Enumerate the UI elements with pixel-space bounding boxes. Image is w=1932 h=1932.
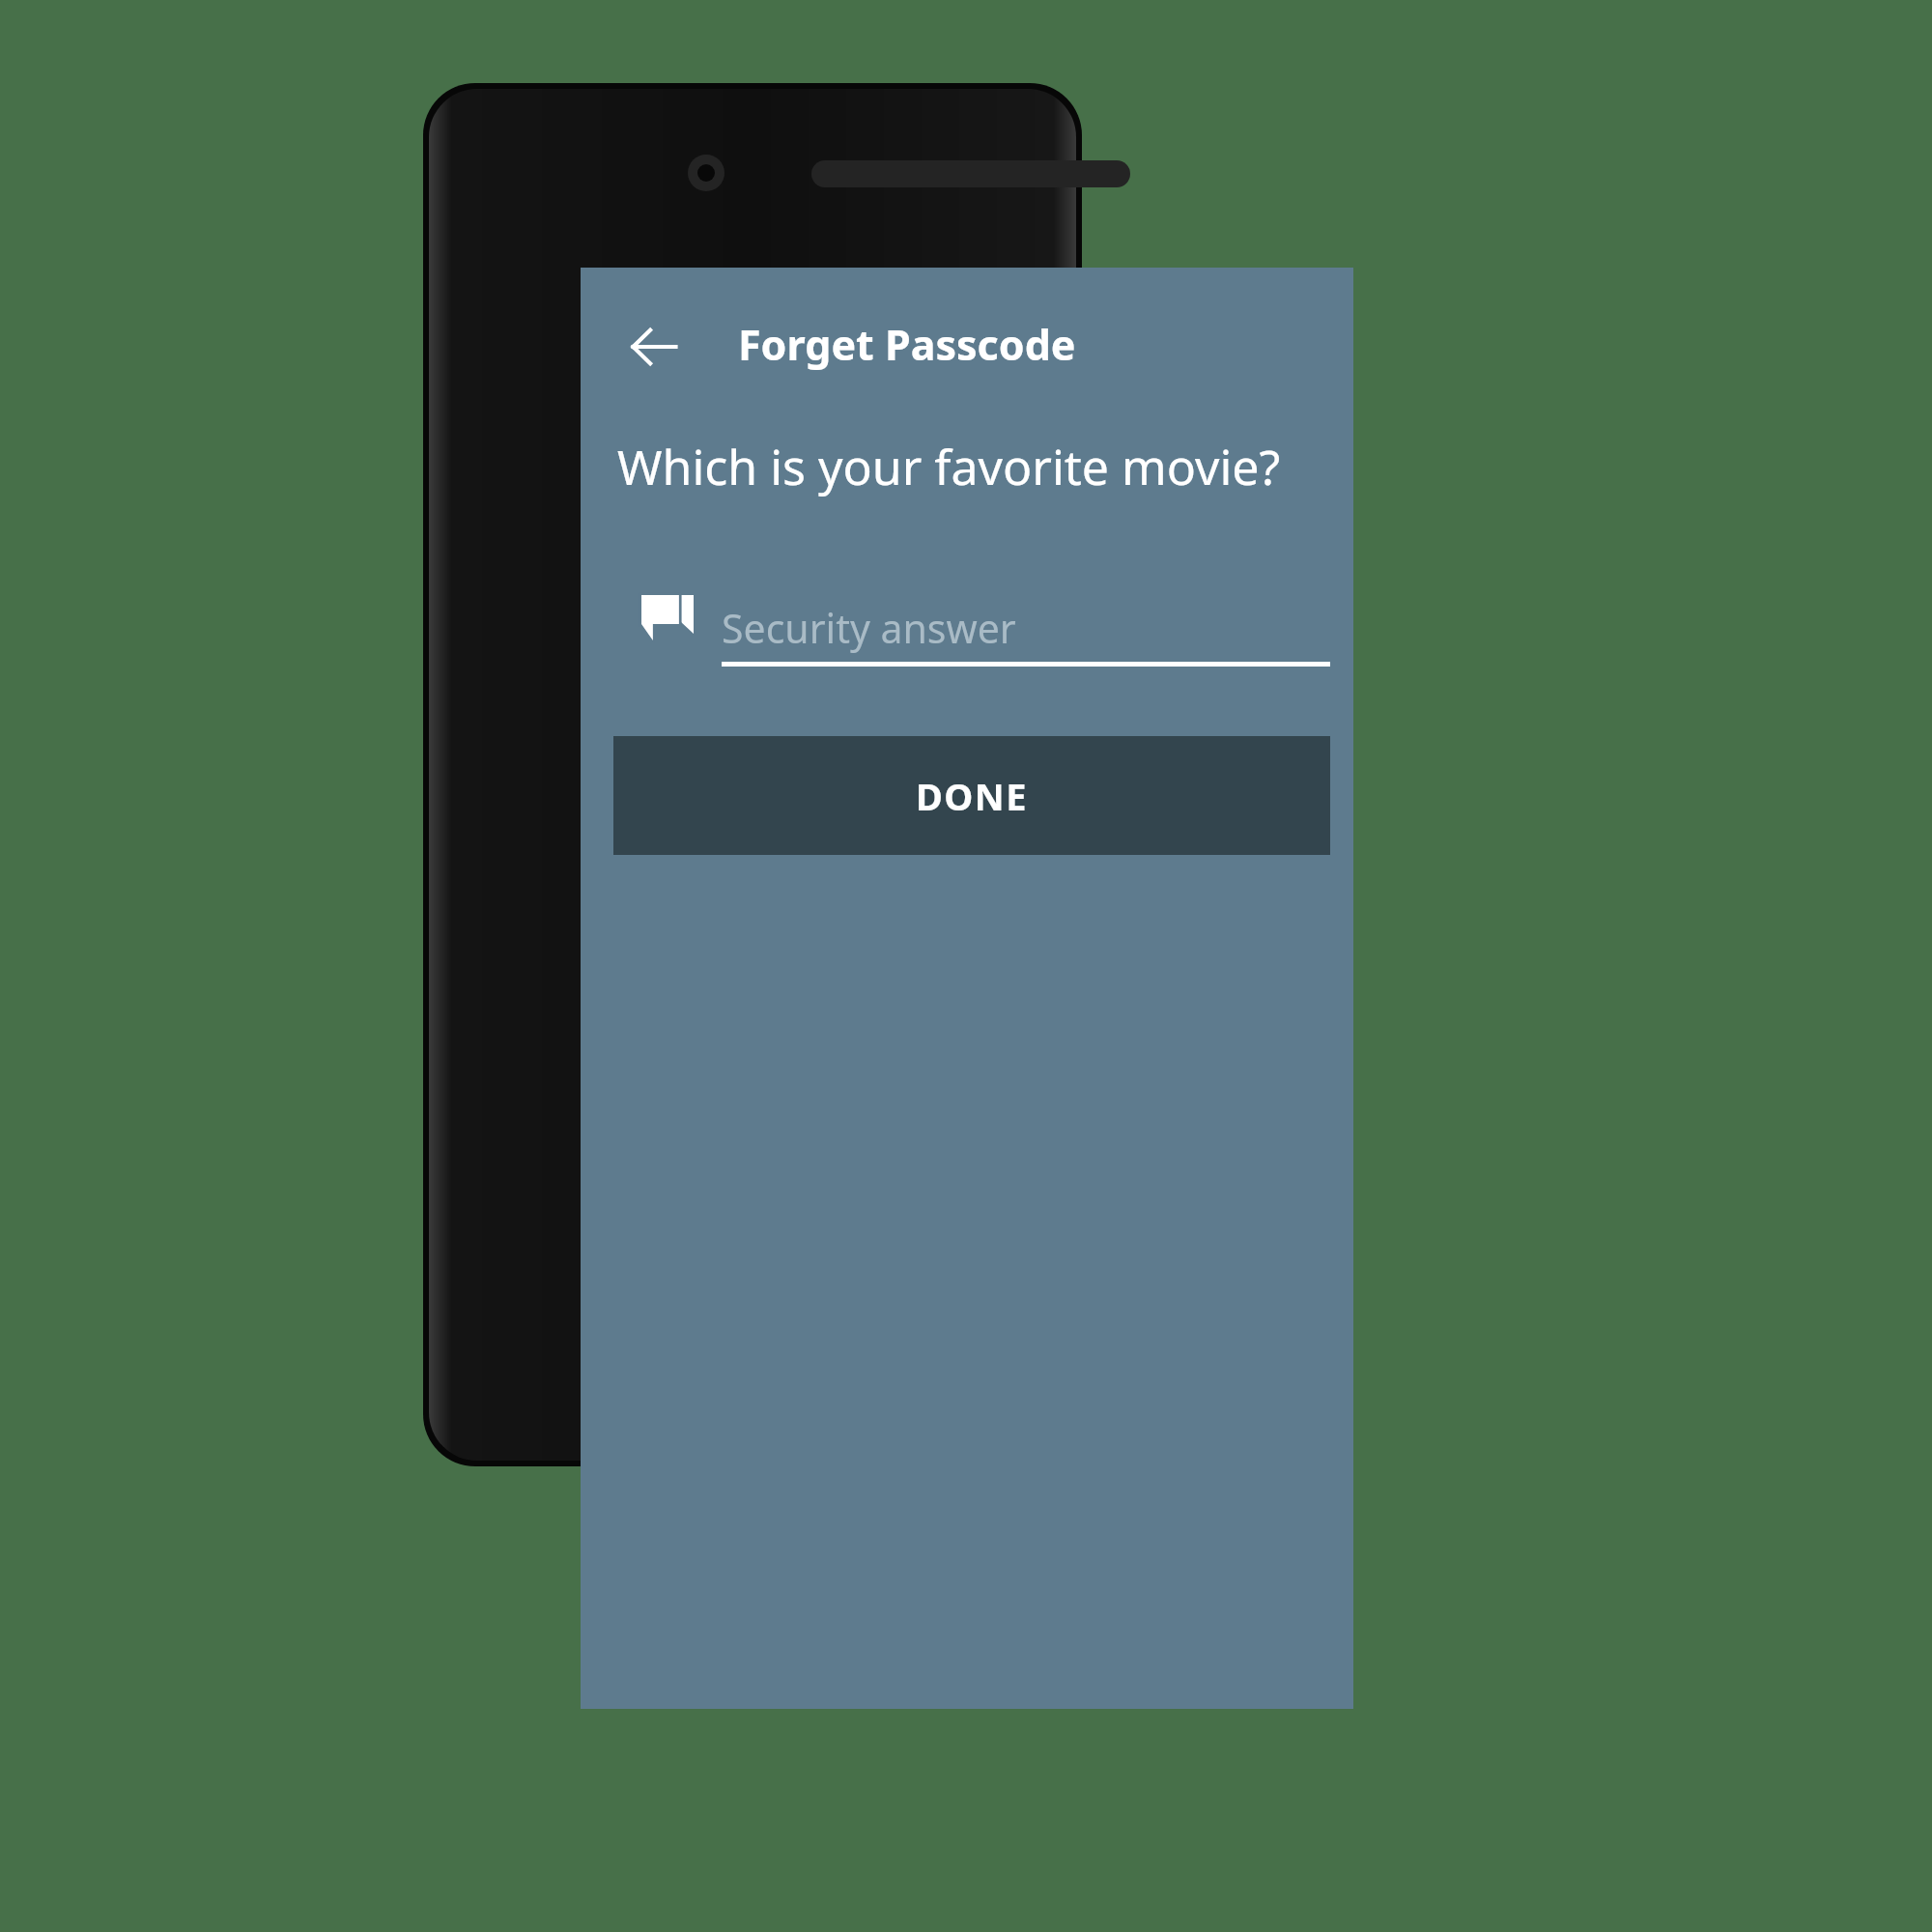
staticText: Forget Passcode — [738, 316, 1076, 373]
button[interactable]: DONE — [613, 736, 1330, 855]
staticText: Security answer — [722, 601, 1016, 655]
staticText: Which is your favorite movie? — [617, 434, 1281, 499]
button[interactable]: Back — [598, 291, 710, 403]
staticText: DONE — [916, 771, 1029, 821]
